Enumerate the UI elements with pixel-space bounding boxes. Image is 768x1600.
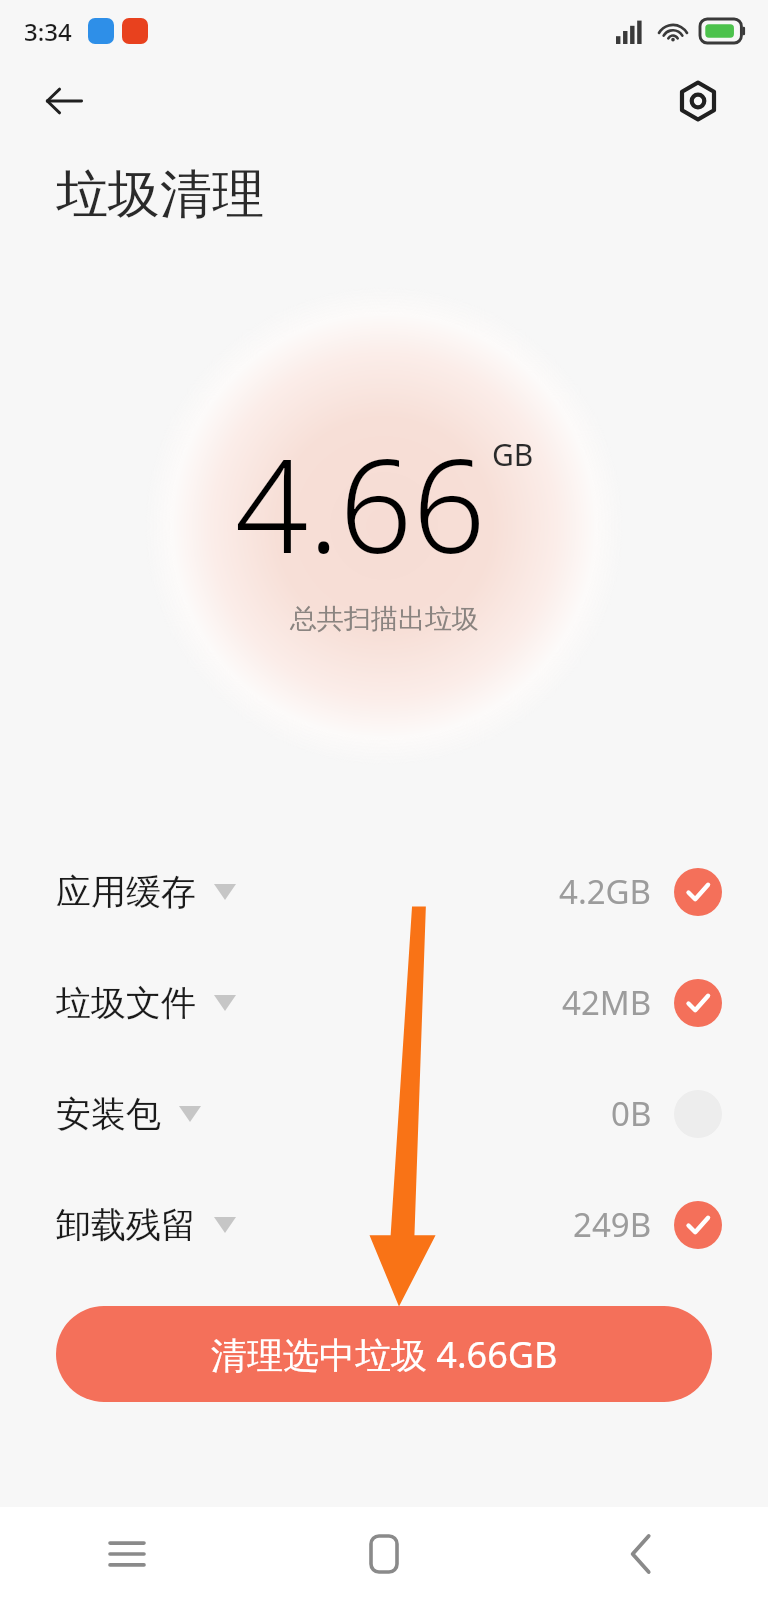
- staticText: 4.2GB: [559, 869, 652, 914]
- staticText: 应用缓存: [56, 870, 196, 914]
- button[interactable]: 应用缓存: [0, 836, 768, 947]
- staticText: 3:34: [24, 15, 72, 48]
- staticText: 垃圾清理: [56, 162, 264, 228]
- staticText: 42MB: [562, 980, 652, 1025]
- button[interactable]: Selected 垃圾文件: [674, 979, 722, 1027]
- button[interactable]: 卸载残留: [0, 1169, 768, 1280]
- button[interactable]: 垃圾文件: [0, 947, 768, 1058]
- button[interactable]: Selected 卸载残留: [674, 1201, 722, 1249]
- staticText: 垃圾文件: [56, 981, 196, 1025]
- staticText: 清理选中垃圾 4.66GB: [211, 1330, 558, 1379]
- button[interactable]: Selected 应用缓存: [674, 868, 722, 916]
- staticText: 总共扫描出垃圾: [290, 602, 479, 636]
- staticText: GB: [492, 434, 534, 475]
- button[interactable]: 安装包: [0, 1058, 768, 1169]
- staticText: 0B: [611, 1091, 652, 1136]
- button[interactable]: Back: [604, 1517, 678, 1591]
- button[interactable]: 清理选中垃圾 4.66GB: [56, 1306, 712, 1402]
- button[interactable]: Home: [347, 1517, 421, 1591]
- staticText: 4.66: [235, 416, 486, 590]
- button[interactable]: Not selected 安装包: [674, 1090, 722, 1138]
- staticText: 卸载残留: [56, 1203, 196, 1247]
- staticText: 安装包: [56, 1092, 161, 1136]
- button[interactable]: Settings: [670, 73, 726, 129]
- button[interactable]: Recent apps: [90, 1517, 164, 1591]
- staticText: 249B: [573, 1202, 652, 1247]
- button[interactable]: Back: [36, 73, 92, 129]
